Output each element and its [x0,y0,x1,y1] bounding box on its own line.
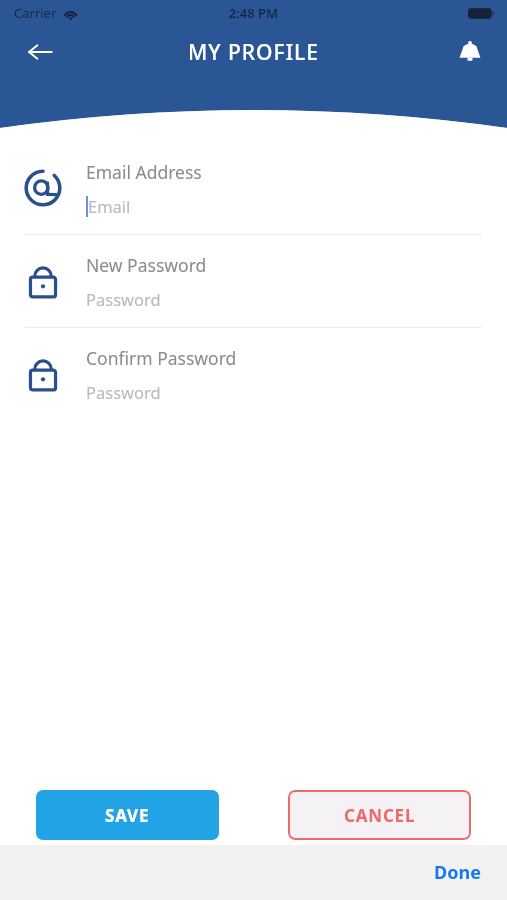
button[interactable]: Notifications [448,30,492,74]
staticText: 2:48 PM [0,4,507,22]
staticText: Email Address [86,160,202,184]
button[interactable]: Email Address [0,142,507,234]
staticText: Carrier [14,4,57,22]
button[interactable]: SAVE [36,790,219,840]
staticText: Confirm Password [86,346,237,370]
staticText: New Password [86,253,207,277]
button[interactable]: New Password [0,235,507,327]
staticText: Password [86,381,161,403]
button[interactable]: Done [424,852,491,893]
staticText: Password [86,288,161,310]
staticText: MY PROFILE [0,38,507,67]
staticText: Email [88,195,131,217]
staticText: SAVE [105,804,150,827]
staticText: Done [434,860,481,885]
staticText: CANCEL [344,804,416,827]
button[interactable]: Confirm Password [0,328,507,420]
button[interactable]: Back [18,30,62,74]
button[interactable]: CANCEL [288,790,471,840]
